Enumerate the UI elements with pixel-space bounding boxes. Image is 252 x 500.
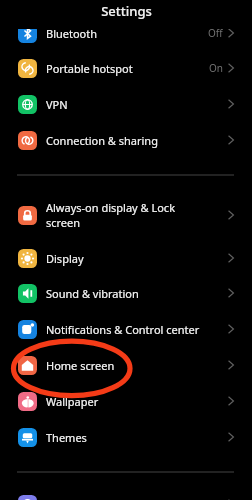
staticText: Sound & vibration bbox=[46, 286, 139, 301]
staticText: On bbox=[209, 61, 223, 75]
button[interactable]: Bluetooth bbox=[0, 16, 252, 50]
button[interactable]: Wallpaper bbox=[0, 384, 252, 418]
button[interactable]: Always-on display & Lock bbox=[0, 193, 252, 237]
staticText: VPN bbox=[46, 97, 68, 112]
staticText: Themes bbox=[46, 430, 87, 445]
staticText: Portable hotspot bbox=[46, 61, 133, 76]
button[interactable]: Connection & sharing bbox=[0, 123, 252, 157]
staticText: Bluetooth bbox=[46, 26, 98, 41]
button[interactable]: Themes bbox=[0, 420, 252, 454]
button[interactable]: Display bbox=[0, 241, 252, 275]
button[interactable]: Accessibility bbox=[0, 487, 252, 500]
staticText: Always-on display & Lock bbox=[46, 200, 176, 215]
staticText: screen bbox=[46, 215, 81, 230]
button[interactable]: Sound & vibration bbox=[0, 276, 252, 310]
staticText: Notifications & Control center bbox=[46, 322, 200, 337]
staticText: Connection & sharing bbox=[46, 133, 158, 148]
staticText: Home screen bbox=[46, 358, 115, 373]
staticText: Settings bbox=[101, 2, 152, 20]
staticText: Wallpaper bbox=[46, 394, 99, 409]
staticText: Off bbox=[208, 26, 223, 40]
button[interactable]: VPN bbox=[0, 87, 252, 121]
button[interactable]: Portable hotspot bbox=[0, 51, 252, 85]
button[interactable]: Home screen bbox=[0, 348, 252, 382]
staticText: Display bbox=[46, 251, 84, 266]
button[interactable]: Notifications & Control center bbox=[0, 312, 252, 346]
